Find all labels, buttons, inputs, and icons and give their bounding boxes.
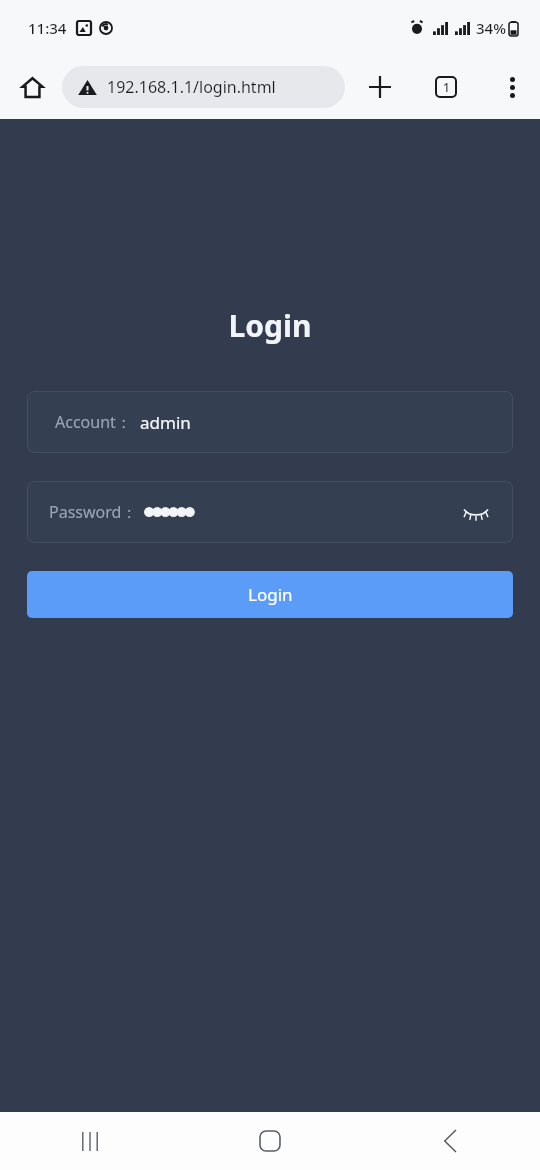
button[interactable]: Password： [27,481,513,543]
staticText: admin [140,411,191,434]
button[interactable]: Home [238,1112,302,1170]
button[interactable]: Account： [27,391,513,453]
staticText: 11:34 [28,18,67,38]
button[interactable]: Home [10,65,54,109]
button[interactable]: New tab [357,64,403,110]
button[interactable]: Show password [459,495,493,529]
staticText: 192.168.1.1/login.html [107,76,276,98]
staticText: Login [0,305,540,346]
button[interactable]: More options [490,65,534,109]
staticText: 34% [476,18,506,38]
staticText: Password： [49,501,138,523]
staticText: 1 [443,79,450,95]
staticText: Account： [55,411,132,433]
button[interactable]: Login [27,571,513,618]
staticText: Login [248,583,293,606]
button[interactable]: Back [418,1112,482,1170]
button[interactable]: 192.168.1.1/login.html [62,66,345,108]
button[interactable]: Tabs, 1 open [423,64,469,110]
button[interactable]: Recent apps [58,1112,122,1170]
